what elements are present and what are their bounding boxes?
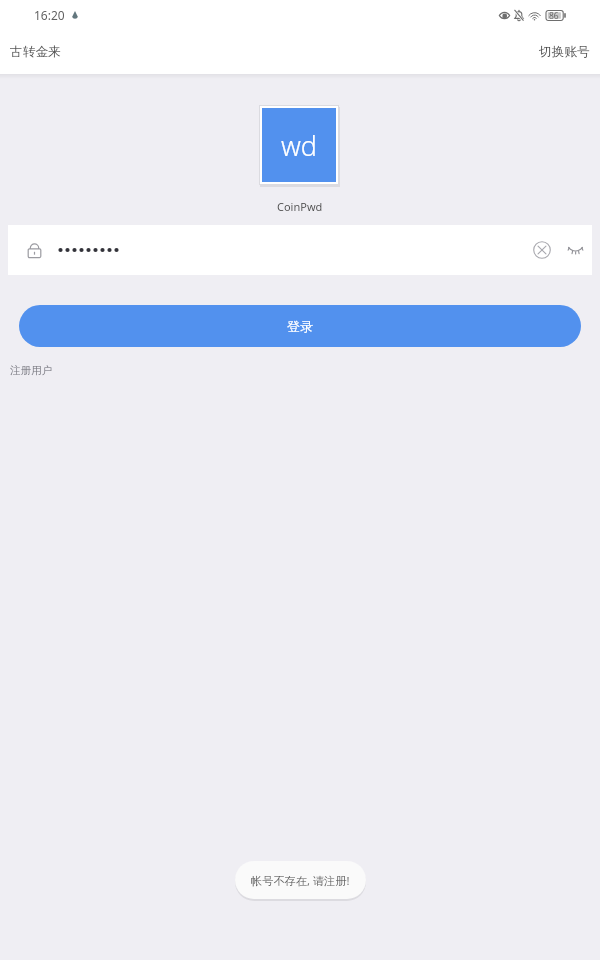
staticText: CoinPwd <box>277 199 323 214</box>
button[interactable]: 登录 <box>19 305 581 347</box>
staticText: 登录 <box>287 318 313 334</box>
staticText: 注册用户 <box>10 364 52 377</box>
button[interactable]: Clear <box>525 225 558 275</box>
staticText: 切换账号 <box>539 44 590 60</box>
button[interactable]: 古转金来 <box>10 44 61 60</box>
staticText: 古转金来 <box>10 44 61 60</box>
staticText: wd <box>281 127 318 164</box>
button[interactable]: 注册用户 <box>10 364 52 377</box>
button[interactable]: 帐号不存在, 请注册! <box>235 861 366 899</box>
button[interactable]: 切换账号 <box>539 44 590 60</box>
staticText: 16:20 <box>34 7 65 23</box>
staticText: 帐号不存在, 请注册! <box>251 873 350 888</box>
staticText: 86 <box>549 10 559 21</box>
button[interactable]: Show password <box>558 225 592 275</box>
